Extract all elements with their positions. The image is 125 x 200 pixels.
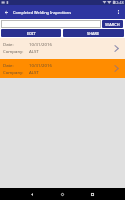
staticText: SHARE [87,31,100,36]
button[interactable]: Home [55,188,69,200]
button[interactable]: Recent apps [85,188,99,200]
button[interactable]: Search field [1,20,101,28]
staticText: 12:48 [114,0,124,5]
staticText: EDIT [27,31,36,36]
staticText: ALST [29,48,39,54]
staticText: SEARCH [105,22,120,27]
button[interactable]: Date: [0,38,125,59]
staticText: Company: [3,48,29,54]
staticText: ALST [29,69,39,75]
button[interactable]: SEARCH [102,20,123,28]
button[interactable]: Date: [0,59,125,78]
staticText: Completed Welding Inspections [13,10,72,15]
staticText: 10/31/2016 [29,62,52,68]
staticText: Date: [3,62,29,68]
staticText: Company: [3,69,29,75]
button[interactable]: EDIT [1,29,61,37]
button[interactable]: More options [112,5,125,19]
staticText: Date: [3,41,29,47]
button[interactable]: SHARE [63,29,124,37]
staticText: 10/31/2016 [29,41,52,47]
button[interactable]: Navigate up [0,5,13,19]
button[interactable]: Back [25,188,39,200]
